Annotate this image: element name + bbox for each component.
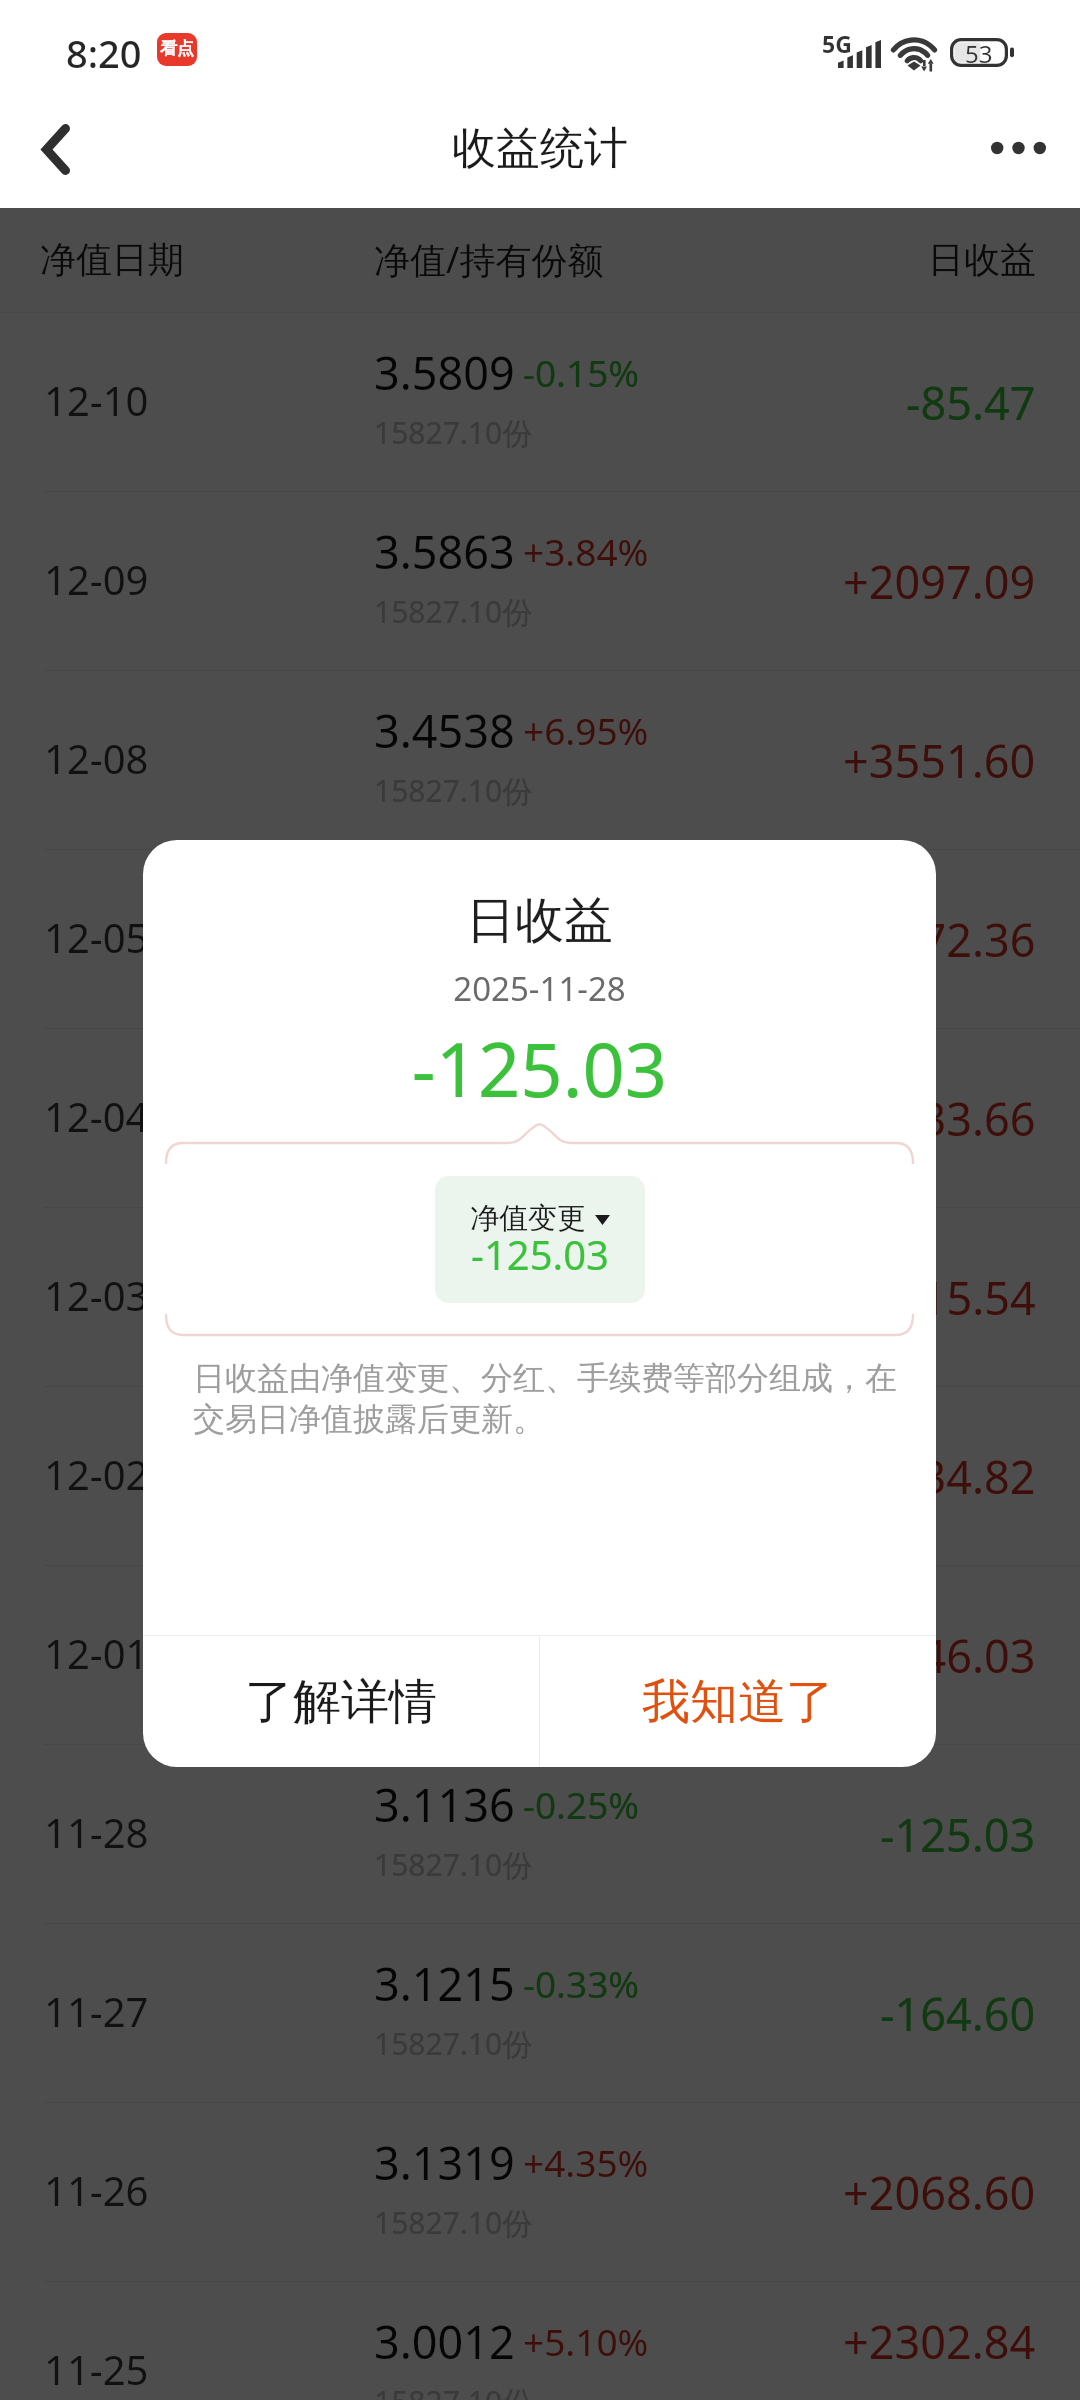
staticText: 3.4538	[374, 700, 515, 761]
staticText: -125.03	[435, 1227, 645, 1281]
staticText: 12-02	[44, 1447, 149, 1501]
staticText: 15827.10份	[374, 2381, 533, 2400]
staticText: 我知道了	[642, 1672, 834, 1732]
staticText: +4.35%	[523, 2137, 649, 2187]
staticText: 15827.10份	[374, 1844, 533, 1885]
staticText: +446.03	[869, 1625, 1036, 1686]
staticText: 53	[965, 37, 993, 67]
button[interactable]: 我知道了	[540, 1636, 936, 1767]
staticText: -0.15%	[523, 347, 640, 397]
button[interactable]: 11-28	[0, 1745, 1080, 1923]
staticText: 日收益	[143, 890, 936, 952]
button[interactable]: 12-04	[0, 1029, 1080, 1207]
staticText: +0.03%	[523, 1242, 649, 1292]
staticText: 了解详情	[245, 1672, 437, 1732]
staticText: 3.5863	[374, 521, 515, 582]
staticText: -125.03	[143, 1018, 936, 1119]
staticText: 15827.10份	[374, 949, 533, 990]
staticText: +3551.60	[843, 730, 1036, 791]
staticText: 3.1561	[374, 1058, 515, 1119]
staticText: +2097.09	[843, 551, 1036, 612]
button[interactable]: 12-05	[0, 850, 1080, 1028]
staticText: 3.1215	[374, 1953, 515, 2014]
staticText: -0.25%	[523, 1779, 640, 1829]
staticText: 15827.10份	[374, 591, 533, 632]
staticText: +533.66	[869, 1088, 1036, 1149]
button[interactable]: 12-08	[0, 671, 1080, 849]
staticText: 净值/持有份额	[374, 235, 604, 284]
staticText: 12-04	[44, 1089, 149, 1143]
button[interactable]: 12-02	[0, 1387, 1080, 1565]
staticText: 2025-11-28	[143, 966, 936, 1011]
staticText: 3.1136	[374, 1774, 515, 1835]
staticText: 3.5809	[374, 342, 515, 403]
staticText: 收益统计	[452, 121, 628, 176]
staticText: 3.2290	[374, 879, 515, 940]
staticText: +334.82	[869, 1446, 1036, 1507]
staticText: 3.0012	[374, 2311, 515, 2372]
staticText: -85.47	[906, 372, 1036, 433]
staticText: 12-01	[44, 1626, 149, 1680]
staticText: +6.95%	[523, 705, 649, 755]
button[interactable]: 12-01	[0, 1566, 1080, 1744]
staticText: 11-27	[44, 1984, 149, 2038]
staticText: 3.1218	[374, 1237, 515, 1298]
button[interactable]: 11-26	[0, 2103, 1080, 2281]
button[interactable]: 净值变更	[435, 1176, 645, 1303]
staticText: 12-10	[44, 373, 149, 427]
staticText: 3.1208	[374, 1416, 515, 1477]
staticText: +1.10%	[523, 1063, 649, 1113]
staticText: +2068.60	[843, 2162, 1036, 2223]
staticText: 3.1319	[374, 2132, 515, 2193]
staticText: 12-05	[44, 910, 149, 964]
button[interactable]: 12-10	[0, 313, 1080, 491]
staticText: 日收益	[928, 237, 1036, 282]
staticText: 看点	[160, 38, 194, 59]
staticText: 净值日期	[40, 237, 184, 282]
button[interactable]: 了解详情	[143, 1636, 539, 1767]
staticText: -164.60	[880, 1983, 1036, 2044]
staticText: 12-03	[44, 1268, 149, 1322]
button[interactable]: 11-25	[0, 2282, 1080, 2400]
staticText: 15827.10份	[374, 1128, 533, 1169]
staticText: 15827.10份	[374, 412, 533, 453]
staticText: +772.36	[869, 909, 1036, 970]
staticText: 15827.10份	[374, 2202, 533, 2243]
staticText: 15827.10份	[374, 770, 533, 811]
staticText: 日收益由净值变更、分红、手续费等部分组成，在交易日净值披露后更新。	[193, 1358, 904, 1440]
staticText: +5.10%	[523, 2316, 649, 2366]
staticText: 11-26	[44, 2163, 149, 2217]
staticText: 12-08	[44, 731, 149, 785]
staticText: 15827.10份	[374, 1665, 533, 1706]
staticText: 15827.10份	[374, 1307, 533, 1348]
button[interactable]: 12-09	[0, 492, 1080, 670]
staticText: 净值变更	[470, 1200, 586, 1237]
staticText: 15827.10份	[374, 2023, 533, 2064]
staticText: 11-28	[44, 1805, 149, 1859]
staticText: 5G	[822, 28, 852, 59]
staticText: 11-25	[44, 2342, 149, 2396]
button[interactable]: Back	[0, 96, 110, 207]
staticText: +3.84%	[523, 526, 649, 576]
button[interactable]: 11-27	[0, 1924, 1080, 2102]
staticText: -0.33%	[523, 1958, 640, 2008]
staticText: 8:20	[66, 27, 142, 79]
button[interactable]: 12-03	[0, 1208, 1080, 1386]
staticText: -125.03	[880, 1804, 1036, 1865]
staticText: +2302.84	[843, 2311, 1036, 2372]
staticText: +2.31%	[523, 884, 649, 934]
staticText: +15.54	[895, 1267, 1036, 1328]
button[interactable]: More options	[964, 96, 1080, 207]
staticText: 12-09	[44, 552, 149, 606]
